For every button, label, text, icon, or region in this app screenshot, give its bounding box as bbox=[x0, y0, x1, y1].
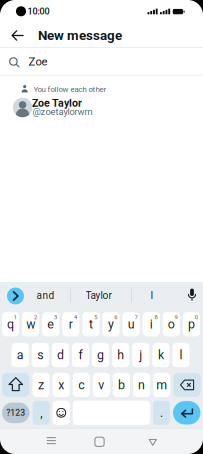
staticText: Taylor bbox=[85, 290, 111, 301]
button[interactable]: x bbox=[53, 373, 70, 397]
button[interactable]: Emoji bbox=[53, 401, 70, 425]
staticText: c bbox=[78, 378, 84, 392]
button[interactable]: Back bbox=[147, 435, 159, 447]
button[interactable]: ?123 bbox=[2, 402, 29, 423]
staticText: i bbox=[150, 317, 153, 331]
staticText: k bbox=[158, 348, 164, 362]
staticText: t bbox=[89, 317, 93, 331]
button[interactable]: l bbox=[172, 343, 189, 367]
staticText: s bbox=[37, 348, 43, 362]
staticText: q bbox=[7, 317, 14, 331]
button[interactable]: u bbox=[123, 312, 140, 336]
staticText: 3 bbox=[54, 314, 57, 321]
button[interactable]: d bbox=[52, 343, 69, 367]
staticText: r bbox=[69, 317, 73, 331]
staticText: 4 bbox=[74, 314, 77, 321]
staticText: Zoe Taylor bbox=[32, 97, 82, 109]
button[interactable]: . bbox=[153, 401, 170, 425]
button[interactable]: h bbox=[112, 343, 129, 367]
button[interactable]: p bbox=[183, 312, 200, 336]
button[interactable]: Voice input bbox=[185, 287, 199, 302]
button[interactable]: r bbox=[62, 312, 79, 336]
staticText: y bbox=[108, 317, 114, 331]
staticText: 6 bbox=[114, 314, 117, 321]
staticText: d bbox=[57, 348, 64, 362]
staticText: e bbox=[47, 317, 54, 331]
button[interactable]: j bbox=[132, 343, 149, 367]
staticText: n bbox=[138, 378, 145, 392]
staticText: 9 bbox=[175, 314, 178, 321]
staticText: I bbox=[150, 290, 153, 301]
button[interactable]: n bbox=[133, 373, 150, 397]
button[interactable]: Shift bbox=[2, 373, 29, 397]
button[interactable]: f bbox=[72, 343, 89, 367]
button[interactable]: g bbox=[92, 343, 109, 367]
staticText: New message bbox=[38, 28, 122, 43]
staticText: Zoe bbox=[28, 55, 47, 68]
button[interactable]: c bbox=[73, 373, 90, 397]
button[interactable]: Return bbox=[173, 401, 200, 424]
button[interactable]: v bbox=[93, 373, 110, 397]
staticText: 7 bbox=[134, 314, 137, 321]
staticText: x bbox=[58, 378, 64, 392]
staticText: You follow each other bbox=[33, 85, 106, 94]
button[interactable]: k bbox=[152, 343, 169, 367]
button[interactable]: Delete bbox=[173, 373, 201, 397]
staticText: h bbox=[117, 348, 124, 362]
staticText: a bbox=[17, 348, 24, 362]
staticText: m bbox=[156, 378, 167, 392]
staticText: l bbox=[179, 348, 182, 362]
button[interactable]: y bbox=[102, 312, 120, 336]
staticText: 8 bbox=[154, 314, 157, 321]
button[interactable]: and bbox=[28, 285, 62, 305]
button[interactable]: t bbox=[82, 312, 99, 336]
button[interactable]: b bbox=[113, 373, 130, 397]
staticText: . bbox=[160, 406, 163, 420]
button[interactable]: Expand suggestions bbox=[7, 287, 24, 304]
button[interactable]: I bbox=[137, 285, 167, 305]
button[interactable]: z bbox=[32, 373, 50, 397]
button[interactable]: w bbox=[22, 312, 39, 336]
button[interactable]: Back bbox=[9, 27, 25, 43]
button[interactable]: s bbox=[32, 343, 49, 367]
staticText: o bbox=[168, 317, 175, 331]
staticText: u bbox=[128, 317, 135, 331]
staticText: 1 bbox=[14, 314, 17, 321]
staticText: 5 bbox=[94, 314, 97, 321]
staticText: v bbox=[98, 378, 104, 392]
staticText: p bbox=[188, 317, 195, 331]
button[interactable]: Home bbox=[95, 437, 104, 446]
staticText: z bbox=[38, 378, 44, 392]
staticText: w bbox=[26, 317, 35, 331]
button[interactable]: o bbox=[163, 312, 180, 336]
staticText: b bbox=[118, 378, 125, 392]
button[interactable]: q bbox=[2, 312, 19, 336]
button[interactable]: a bbox=[12, 343, 29, 367]
button[interactable]: Recent apps bbox=[43, 433, 59, 449]
button[interactable]: e bbox=[42, 312, 59, 336]
staticText: 10:00 bbox=[27, 6, 49, 17]
staticText: g bbox=[97, 348, 104, 362]
staticText: , bbox=[40, 406, 42, 420]
button[interactable]: Zoe bbox=[0, 50, 203, 77]
staticText: and bbox=[36, 290, 54, 301]
button[interactable]: Zoe Taylor bbox=[0, 94, 203, 121]
button[interactable]: m bbox=[153, 373, 170, 397]
button[interactable]: , bbox=[33, 401, 50, 425]
staticText: 2 bbox=[34, 314, 37, 321]
staticText: f bbox=[78, 348, 82, 362]
staticText: j bbox=[139, 348, 142, 362]
button[interactable]: i bbox=[143, 312, 160, 336]
button[interactable]: Taylor bbox=[76, 285, 120, 305]
staticText: @zoetaylorwm bbox=[32, 106, 92, 117]
staticText: 0 bbox=[195, 314, 198, 321]
staticText: ?123 bbox=[6, 408, 25, 418]
